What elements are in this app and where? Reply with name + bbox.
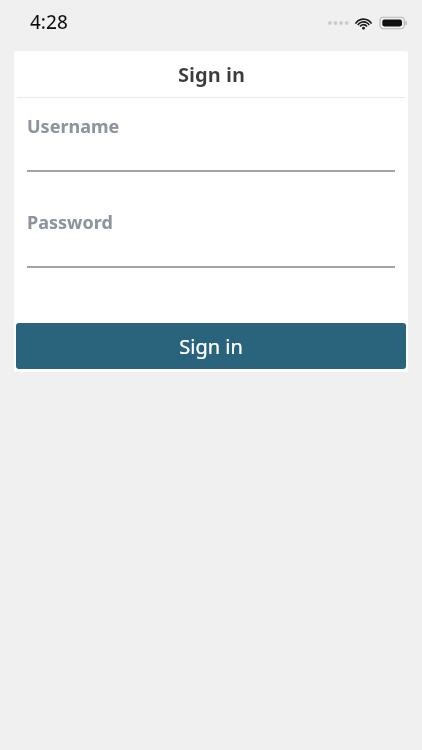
staticText: Sign in (178, 61, 245, 88)
button[interactable]: Sign in (16, 323, 406, 369)
button[interactable]: Username (27, 114, 395, 172)
staticText: Password (27, 210, 113, 235)
staticText: Username (27, 114, 120, 139)
button[interactable]: Password (27, 210, 395, 268)
staticText: Sign in (179, 333, 243, 360)
staticText: 4:28 (30, 9, 68, 35)
